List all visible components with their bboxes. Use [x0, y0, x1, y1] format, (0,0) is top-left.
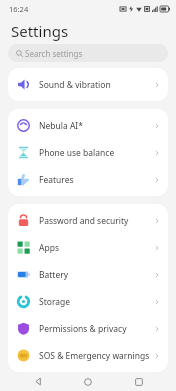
- staticText: Battery: [39, 269, 154, 281]
- staticText: Permissions & privacy: [39, 323, 154, 335]
- button[interactable]: Back: [25, 372, 51, 391]
- button[interactable]: Features: [8, 166, 168, 193]
- staticText: Storage: [39, 296, 154, 308]
- staticText: Phone use balance: [39, 147, 154, 159]
- staticText: Search settings: [25, 48, 83, 59]
- button[interactable]: SOS & Emergency warnings: [8, 342, 168, 369]
- staticText: 16:24: [9, 4, 29, 14]
- staticText: Features: [39, 174, 154, 186]
- button[interactable]: Storage: [8, 288, 168, 315]
- button[interactable]: Nebula AI*: [8, 112, 168, 139]
- staticText: Nebula AI*: [39, 120, 154, 132]
- button[interactable]: Search settings: [8, 44, 168, 62]
- staticText: Apps: [39, 242, 154, 254]
- staticText: Sound & vibration: [39, 79, 154, 91]
- button[interactable]: Permissions & privacy: [8, 315, 168, 342]
- button[interactable]: Sound & vibration: [8, 71, 168, 98]
- staticText: SOS & Emergency warnings: [39, 350, 154, 362]
- staticText: Password and security: [39, 215, 154, 227]
- button[interactable]: Password and security: [8, 207, 168, 234]
- button[interactable]: Home: [75, 372, 101, 391]
- button[interactable]: Phone use balance: [8, 139, 168, 166]
- staticText: Settings: [11, 21, 69, 41]
- button[interactable]: Apps: [8, 234, 168, 261]
- button[interactable]: Recents: [126, 372, 152, 391]
- button[interactable]: Battery: [8, 261, 168, 288]
